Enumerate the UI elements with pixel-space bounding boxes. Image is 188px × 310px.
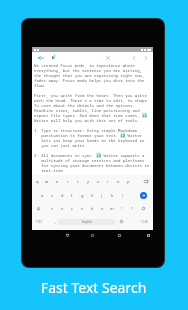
staticText: 1. Type to structure: Using simple Markd…: [34, 128, 138, 133]
staticText: ?: [131, 206, 133, 211]
staticText: c: [71, 206, 73, 211]
staticText: e: [56, 179, 59, 184]
staticText: o: [117, 179, 120, 184]
staticText: w: [45, 179, 49, 184]
button[interactable]: Emoji: [116, 215, 126, 228]
staticText: We created Focus mode, to experience whe…: [34, 63, 135, 68]
button[interactable]: y: [83, 175, 93, 188]
staticText: a: [41, 193, 44, 198]
staticText: the thought that you are expressing righ…: [34, 73, 145, 78]
button[interactable]: Enter: [138, 189, 148, 202]
button[interactable]: o: [113, 175, 123, 188]
staticText: q: [36, 179, 39, 184]
staticText: k: [111, 193, 114, 198]
staticText: v: [81, 206, 84, 211]
staticText: English: [82, 220, 92, 224]
staticText: t: [77, 179, 79, 184]
staticText: 11:28: [141, 220, 148, 224]
button[interactable]: Previous match: [129, 52, 139, 63]
staticText: everything, but the sentence you are wri…: [34, 68, 142, 73]
button[interactable]: g: [77, 189, 87, 202]
staticText: !: [121, 206, 123, 211]
staticText: r: [67, 179, 69, 184]
button[interactable]: i: [103, 175, 113, 188]
staticText: Writer will help you with this set of to…: [34, 118, 140, 123]
staticText: u: [97, 179, 100, 184]
button[interactable]: w: [42, 175, 52, 188]
staticText: export file types. And when that time co…: [34, 113, 147, 118]
staticText: punctuation to format your text. iA Writ…: [34, 133, 142, 138]
staticText: g: [81, 193, 84, 198]
staticText: real-time.: [34, 168, 66, 173]
button[interactable]: e: [52, 175, 62, 188]
button[interactable]: App icon: [48, 52, 58, 63]
staticText: ,: [55, 219, 57, 224]
button[interactable]: s: [47, 189, 57, 202]
staticText: x: [61, 206, 64, 211]
button[interactable]: m: [107, 202, 117, 215]
button[interactable]: Next match: [141, 52, 151, 63]
staticText: ?123: [36, 220, 42, 224]
button[interactable]: Shift: [33, 202, 43, 215]
staticText: h: [91, 193, 94, 198]
staticText: multitude of storage services and platfo…: [34, 158, 145, 163]
staticText: To care about the details and the option…: [34, 103, 135, 108]
button[interactable]: !: [117, 202, 127, 215]
button[interactable]: f: [67, 189, 77, 202]
staticText: fades away. Focus mode helps you dive in…: [34, 78, 145, 83]
staticText: for syncing your documents between devic…: [34, 163, 150, 168]
button[interactable]: c: [67, 202, 77, 215]
button[interactable]: ,: [51, 215, 61, 228]
staticText: m: [110, 206, 114, 211]
button[interactable]: Back: [36, 52, 46, 63]
button[interactable]: z: [47, 202, 57, 215]
staticText: d: [61, 193, 64, 198]
button[interactable]: Clear search: [103, 52, 113, 63]
staticText: j: [101, 193, 103, 198]
staticText: with the head. There's a time to edit, t…: [34, 98, 150, 103]
button[interactable]: Back: [62, 230, 72, 240]
button[interactable]: q: [32, 175, 42, 188]
button[interactable]: t: [73, 175, 83, 188]
button[interactable]: n: [97, 202, 107, 215]
button[interactable]: h: [87, 189, 97, 202]
staticText: z: [51, 206, 53, 211]
staticText: .: [130, 219, 132, 224]
staticText: Headline sizes, tables, line positioning…: [34, 108, 140, 113]
staticText: l: [122, 193, 124, 198]
button[interactable]: Delete: [138, 202, 148, 215]
button[interactable]: u: [93, 175, 103, 188]
button[interactable]: l: [118, 189, 128, 202]
button[interactable]: d: [57, 189, 67, 202]
staticText: p: [127, 179, 130, 184]
button[interactable]: Hide keyboard: [143, 230, 153, 240]
button[interactable]: r: [63, 175, 73, 188]
staticText: flow.: [34, 83, 46, 88]
button[interactable]: x: [57, 202, 67, 215]
button[interactable]: k: [107, 189, 117, 202]
staticText: s: [51, 193, 53, 198]
button[interactable]: p: [123, 175, 133, 188]
staticText: n: [101, 206, 104, 211]
button[interactable]: Backspace: [141, 175, 151, 188]
button[interactable]: ?: [127, 202, 137, 215]
button[interactable]: a: [37, 189, 47, 202]
staticText: b: [91, 206, 94, 211]
staticText: f: [71, 193, 73, 198]
staticText: you can just write.: [34, 143, 87, 148]
button[interactable]: ?123: [34, 215, 44, 228]
button[interactable]: j: [97, 189, 107, 202]
button[interactable]: v: [77, 202, 87, 215]
button[interactable]: Home: [87, 230, 97, 240]
staticText: 2. All documents in sync: iA Writer supp…: [34, 153, 145, 158]
button[interactable]: English: [58, 219, 115, 225]
staticText: i: [107, 179, 109, 184]
button[interactable]: 11:28: [139, 215, 149, 228]
button[interactable]: Recents: [114, 230, 124, 240]
staticText: First, you write from the heart. Then yo…: [34, 93, 147, 98]
staticText: lets you keep your hands on the keyboard…: [34, 138, 145, 143]
staticText: Fast Text Search: [41, 278, 147, 297]
staticText: y: [87, 179, 90, 184]
button[interactable]: b: [87, 202, 97, 215]
